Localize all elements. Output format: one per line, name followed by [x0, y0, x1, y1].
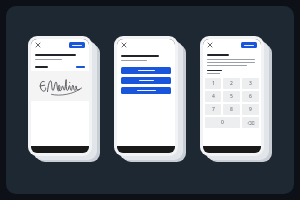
- button[interactable]: 4: [205, 91, 221, 102]
- button[interactable]: Close: [207, 42, 213, 48]
- button[interactable]: [69, 42, 85, 48]
- button[interactable]: 1: [205, 78, 221, 89]
- staticText: 8: [230, 106, 233, 113]
- button[interactable]: 3: [242, 78, 259, 89]
- button[interactable]: [121, 77, 171, 84]
- staticText: 3: [249, 80, 252, 87]
- button[interactable]: 8: [223, 104, 240, 115]
- button[interactable]: 2: [223, 78, 240, 89]
- staticText: 1: [212, 80, 215, 87]
- button[interactable]: 7: [205, 104, 221, 115]
- button[interactable]: [31, 71, 89, 101]
- button[interactable]: Close: [35, 42, 41, 48]
- button[interactable]: [121, 67, 171, 74]
- button[interactable]: 0: [205, 117, 240, 128]
- button[interactable]: 9: [242, 104, 259, 115]
- button[interactable]: ⌫: [242, 117, 259, 128]
- button[interactable]: [241, 42, 257, 48]
- button[interactable]: Close: [121, 42, 127, 48]
- button[interactable]: [76, 66, 85, 68]
- staticText: ⌫: [247, 120, 255, 126]
- staticText: 6: [249, 93, 252, 100]
- staticText: 0: [221, 119, 224, 126]
- staticText: 5: [230, 93, 233, 100]
- button[interactable]: 5: [223, 91, 240, 102]
- button[interactable]: [121, 87, 171, 94]
- button[interactable]: 6: [242, 91, 259, 102]
- staticText: 4: [212, 93, 215, 100]
- staticText: 9: [249, 106, 252, 113]
- staticText: 7: [212, 106, 215, 113]
- staticText: 2: [230, 80, 233, 87]
